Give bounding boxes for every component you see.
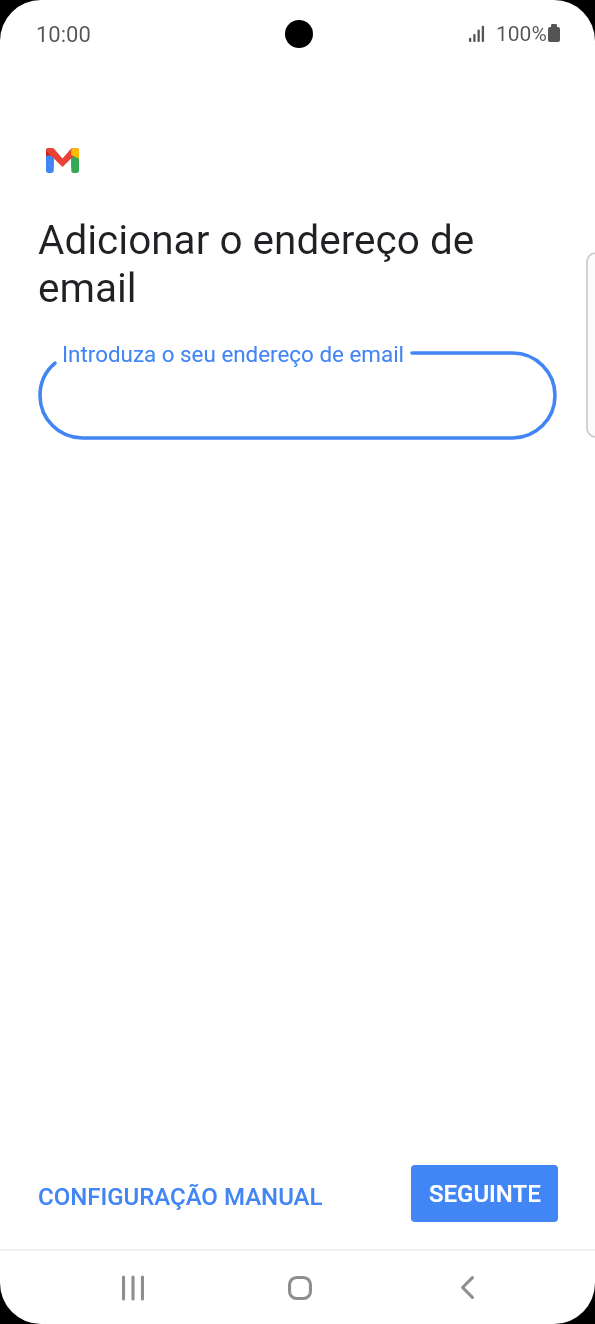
- button[interactable]: Introduza o seu endereço de email: [55, 341, 410, 367]
- staticText: SEGUINTE: [429, 1180, 541, 1208]
- staticText: Adicionar o endereço de email: [38, 216, 514, 312]
- staticText: Introduza o seu endereço de email: [62, 341, 405, 367]
- button[interactable]: Introduza o seu endereço de email: [40, 353, 555, 438]
- button[interactable]: Recent apps: [86, 1251, 180, 1324]
- staticText: 10:00: [36, 22, 91, 48]
- staticText: CONFIGURAÇÃO MANUAL: [38, 1183, 323, 1211]
- button[interactable]: CONFIGURAÇÃO MANUAL: [28, 1167, 332, 1227]
- button[interactable]: Home: [253, 1251, 347, 1324]
- button[interactable]: Back: [420, 1251, 514, 1324]
- button[interactable]: SEGUINTE: [411, 1165, 558, 1222]
- other: Edge panel handle: [586, 252, 595, 438]
- staticText: 100%: [496, 22, 547, 47]
